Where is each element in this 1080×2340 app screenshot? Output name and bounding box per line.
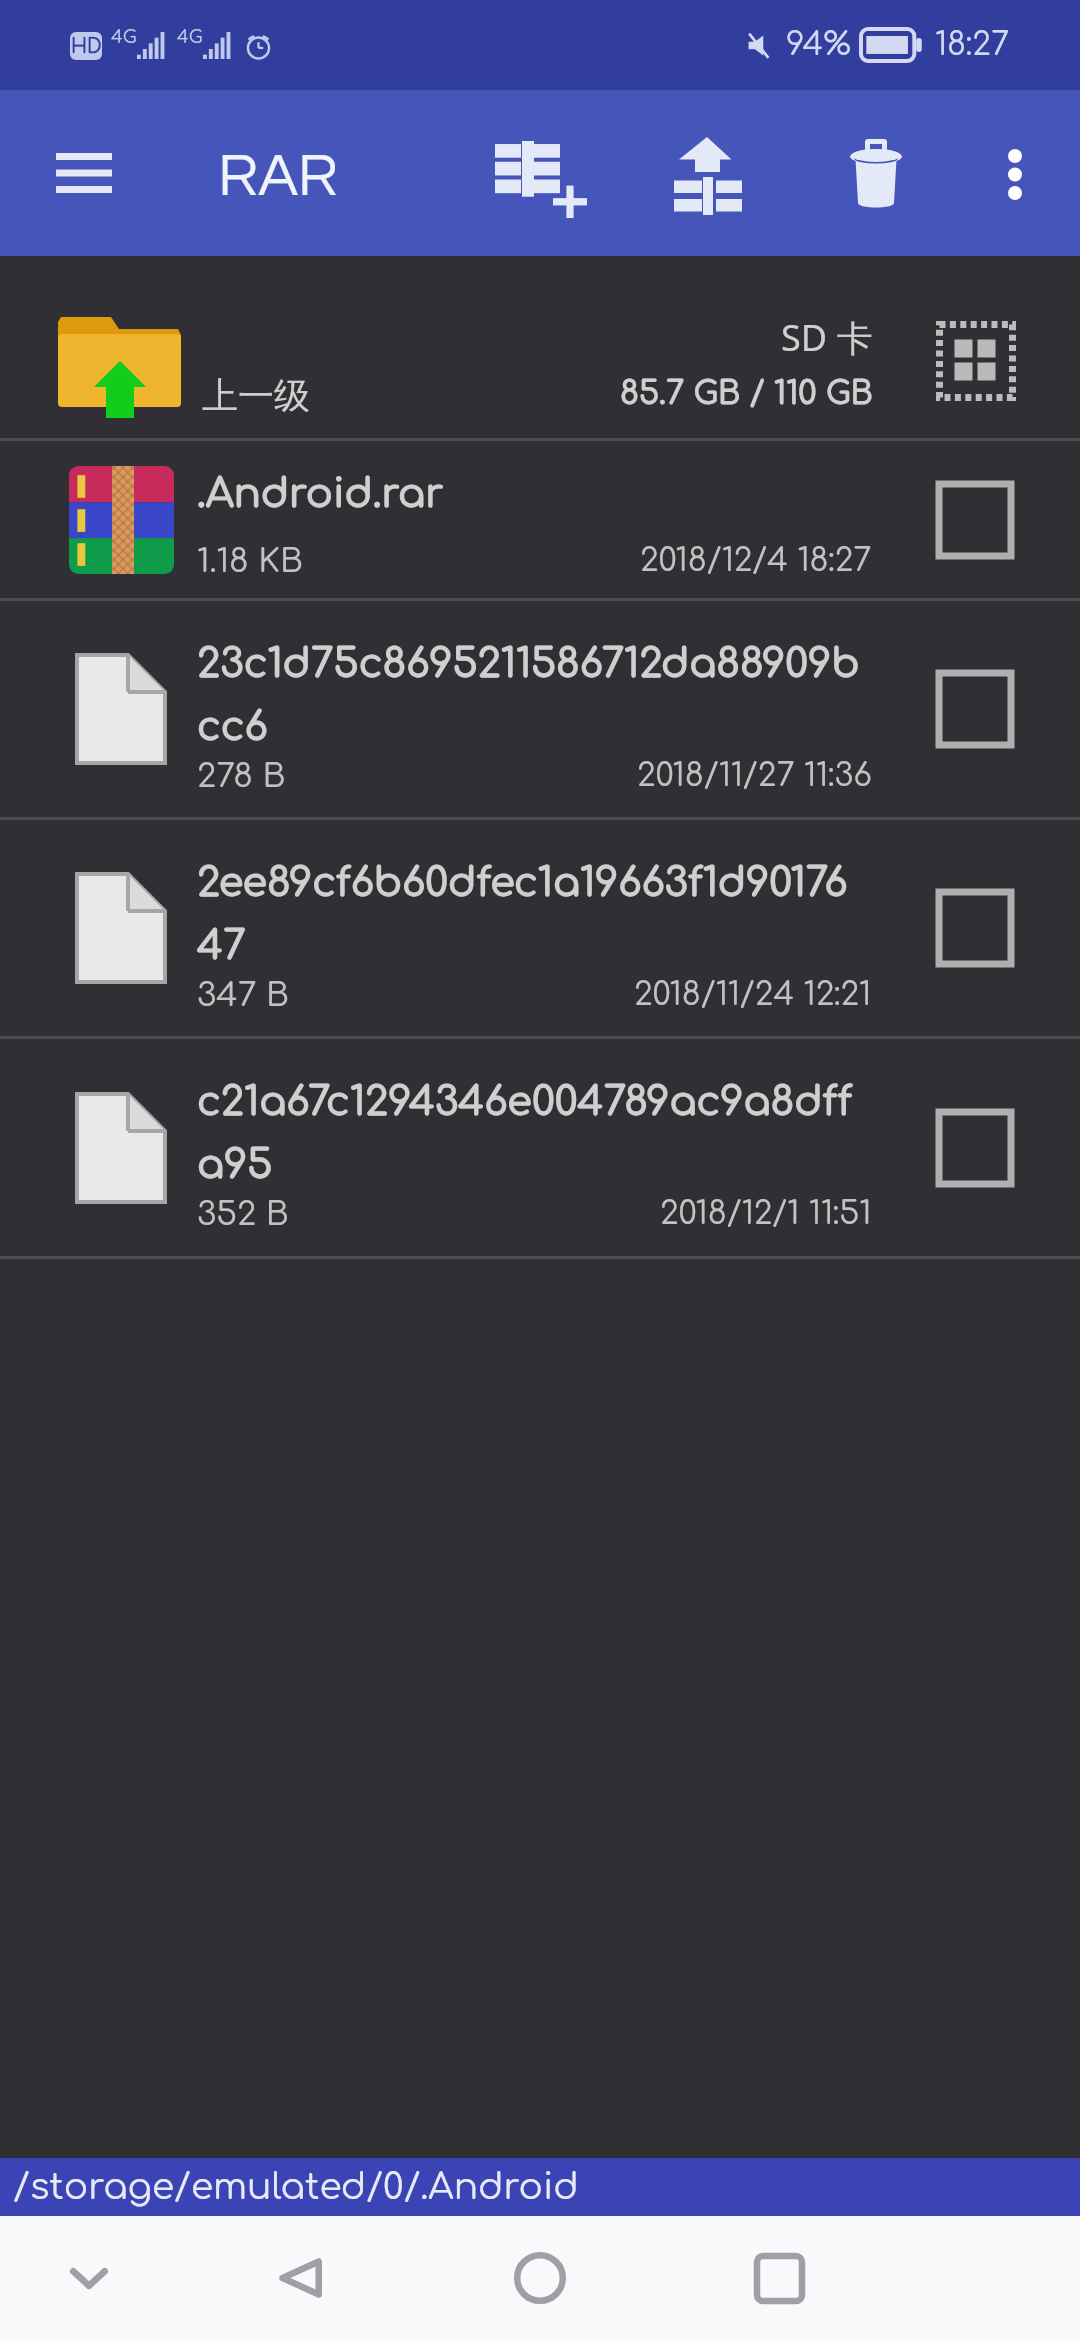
- button[interactable]: Home: [480, 2218, 600, 2338]
- button[interactable]: 23c1d75c8695211586712da88909b: [0, 601, 1080, 817]
- staticText: /storage/emulated/0/.Android: [13, 2167, 579, 2207]
- button[interactable]: Select: [931, 476, 1019, 564]
- staticText: 23c1d75c8695211586712da88909b: [197, 642, 860, 687]
- staticText: 85.7 GB / 110 GB: [620, 376, 873, 412]
- button[interactable]: Extract: [654, 122, 762, 230]
- button[interactable]: More options: [961, 120, 1069, 228]
- staticText: 2018/11/24 12:21: [634, 977, 872, 1013]
- staticText: 上一级: [202, 373, 310, 418]
- staticText: RAR: [218, 146, 338, 208]
- staticText: c21a67c1294346e004789ac9a8dff: [197, 1080, 852, 1125]
- staticText: 47: [197, 924, 246, 969]
- button[interactable]: Add to archive: [487, 125, 595, 233]
- staticText: 278 B: [197, 758, 286, 795]
- staticText: HD: [71, 36, 102, 57]
- button[interactable]: Select: [931, 884, 1019, 972]
- staticText: 18:27: [935, 27, 1010, 63]
- staticText: .Android.rar: [197, 472, 444, 517]
- button[interactable]: Back: [239, 2218, 359, 2338]
- staticText: 2018/12/4 18:27: [640, 543, 872, 579]
- staticText: 1.18 KB: [197, 543, 303, 580]
- button[interactable]: Select: [931, 665, 1019, 753]
- staticText: 4G: [177, 27, 203, 47]
- button[interactable]: Menu: [36, 125, 132, 221]
- button[interactable]: Recents: [719, 2218, 839, 2338]
- staticText: 4G: [111, 27, 137, 47]
- button[interactable]: c21a67c1294346e004789ac9a8dff: [0, 1039, 1080, 1256]
- staticText: 94%: [786, 27, 851, 63]
- button[interactable]: Hide keyboard: [29, 2218, 149, 2338]
- staticText: cc6: [197, 705, 268, 750]
- button[interactable]: 上一级: [0, 256, 1080, 438]
- button[interactable]: .Android.rar: [0, 441, 1080, 598]
- staticText: a95: [197, 1143, 273, 1188]
- staticText: 2018/12/1 11:51: [660, 1196, 872, 1232]
- staticText: 2ee89cf6b60dfec1a19663f1d90176: [197, 861, 848, 906]
- staticText: SD 卡: [781, 313, 873, 362]
- staticText: 2018/11/27 11:36: [637, 758, 872, 794]
- staticText: 347 B: [197, 977, 290, 1014]
- button[interactable]: Delete: [822, 119, 930, 227]
- button[interactable]: /storage/emulated/0/.Android: [0, 2158, 1080, 2216]
- button[interactable]: 2ee89cf6b60dfec1a19663f1d90176: [0, 820, 1080, 1036]
- button[interactable]: Select: [931, 1104, 1019, 1192]
- staticText: 352 B: [197, 1196, 289, 1233]
